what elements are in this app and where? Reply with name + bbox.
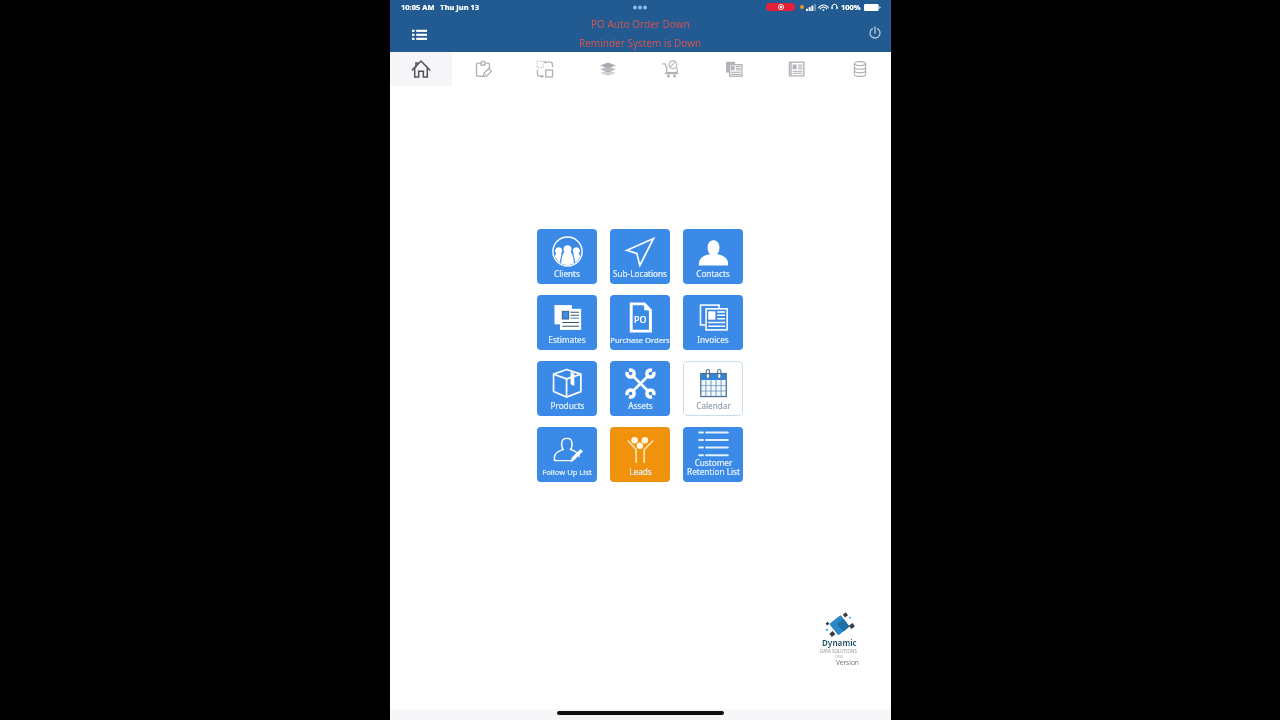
staticText: Follow Up List	[542, 467, 592, 477]
button[interactable]: Database	[828, 52, 891, 86]
button[interactable]: Clients	[537, 229, 597, 284]
staticText: Version	[836, 658, 859, 667]
button[interactable]: Home	[390, 52, 452, 86]
button[interactable]: Invoices	[683, 295, 743, 350]
staticText: Invoices	[697, 334, 729, 345]
button[interactable]: Calendar	[683, 361, 743, 416]
staticText: Sub-Locations	[613, 268, 667, 279]
staticText: Dynamic	[822, 637, 857, 648]
staticText: Products	[550, 400, 585, 411]
staticText: Assets	[628, 400, 653, 411]
staticText: 10:05 AM Thu Jun 13	[401, 2, 480, 12]
button[interactable]: Power	[864, 21, 886, 43]
staticText: Calendar	[696, 400, 731, 411]
button[interactable]: Estimates	[537, 295, 597, 350]
button[interactable]: News	[765, 52, 828, 86]
button[interactable]: Products	[537, 361, 597, 416]
staticText: Reminder System is Down	[579, 36, 702, 50]
button[interactable]: Sub-Locations	[610, 229, 670, 284]
staticText: Purchase Orders	[610, 335, 670, 345]
staticText: PO	[634, 313, 647, 325]
staticText: CRM	[835, 654, 843, 659]
staticText: 100%	[841, 2, 861, 12]
button[interactable]: Layers	[576, 52, 639, 86]
button[interactable]: Menu	[407, 23, 431, 47]
staticText: Contacts	[696, 268, 730, 279]
button[interactable]: PO	[610, 295, 670, 350]
staticText: Customer Retention List	[687, 457, 740, 477]
staticText: Leads	[629, 466, 652, 477]
button[interactable]: Customer Retention List	[683, 427, 743, 482]
staticText: PO Auto Order Down	[591, 17, 690, 31]
staticText: Estimates	[548, 334, 586, 345]
button[interactable]: Documents	[702, 52, 765, 86]
staticText: Clients	[554, 268, 580, 279]
button[interactable]: Assets	[610, 361, 670, 416]
button[interactable]: Transfers	[514, 52, 576, 86]
staticText: DATA SOLUTIONS	[820, 648, 858, 654]
button[interactable]: Leads	[610, 427, 670, 482]
button[interactable]: Contacts	[683, 229, 743, 284]
button[interactable]: Tasks	[452, 52, 514, 86]
button[interactable]: Cart	[639, 52, 702, 86]
button[interactable]: Follow Up List	[537, 427, 597, 482]
